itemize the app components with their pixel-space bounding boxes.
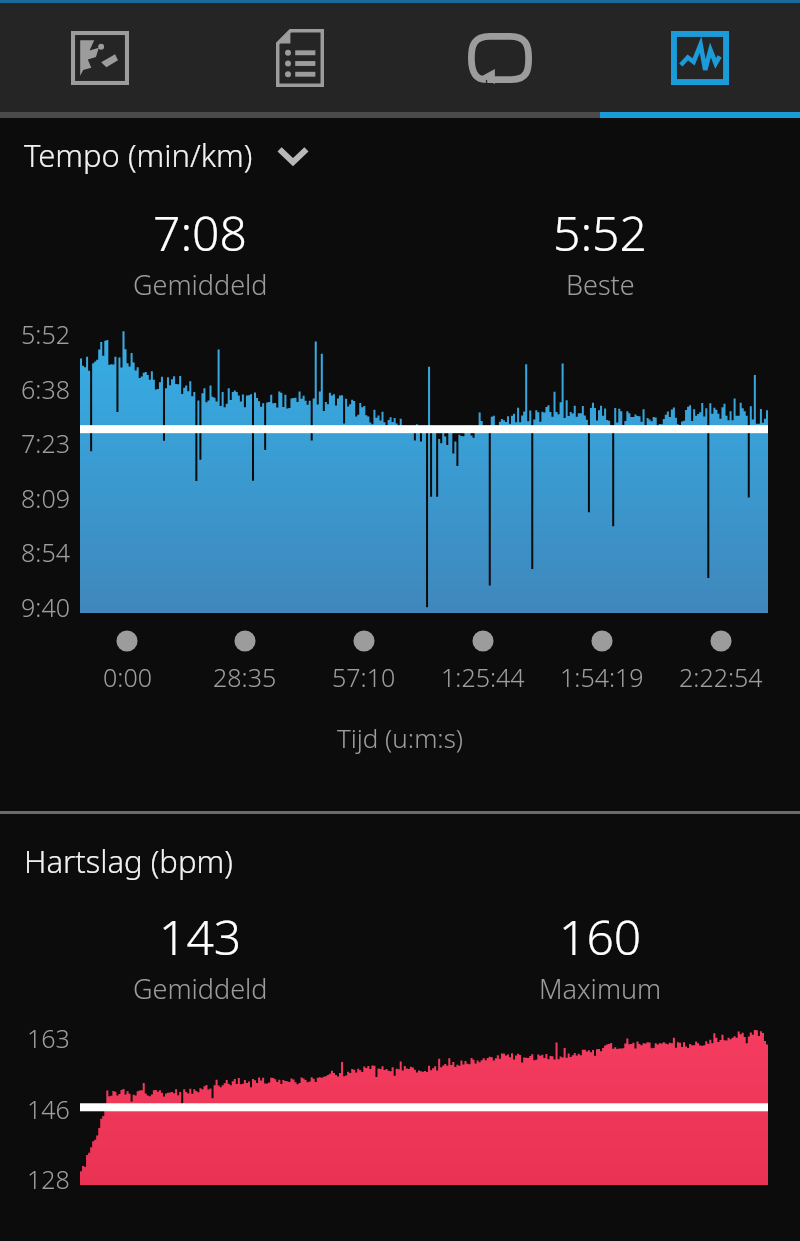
staticText: 9:40: [21, 590, 70, 624]
staticText: 7:08: [153, 200, 247, 265]
staticText: 8:54: [21, 535, 70, 569]
staticText: 163: [27, 1021, 70, 1055]
staticText: Gemiddeld: [133, 266, 268, 303]
staticText: 0:00: [103, 660, 152, 694]
staticText: 8:09: [21, 481, 70, 515]
staticText: Maximum: [539, 970, 662, 1007]
staticText: 57:10: [332, 660, 396, 694]
staticText: 160: [559, 904, 642, 969]
staticText: 128: [27, 1162, 70, 1196]
button[interactable]: Map tab: [0, 3, 200, 112]
staticText: 6:38: [21, 372, 70, 406]
button[interactable]: Details tab: [200, 3, 400, 112]
staticText: 143: [159, 904, 242, 969]
staticText: Hartslag (bpm): [24, 840, 233, 882]
staticText: 2:22:54: [679, 660, 763, 694]
button[interactable]: Tempo (min/km): [0, 130, 800, 180]
staticText: 5:52: [553, 200, 647, 265]
staticText: Beste: [566, 266, 635, 303]
staticText: 5:52: [21, 317, 70, 351]
button[interactable]: Graphs tab: [600, 3, 800, 112]
staticText: Tempo (min/km): [24, 134, 253, 176]
staticText: 146: [27, 1092, 70, 1126]
staticText: Gemiddeld: [133, 970, 268, 1007]
button[interactable]: Laps tab: [400, 3, 600, 112]
staticText: 1:54:19: [560, 660, 644, 694]
staticText: 1:25:44: [441, 660, 525, 694]
staticText: 7:23: [21, 426, 70, 460]
staticText: 28:35: [213, 660, 277, 694]
staticText: Tijd (u:m:s): [0, 720, 800, 755]
